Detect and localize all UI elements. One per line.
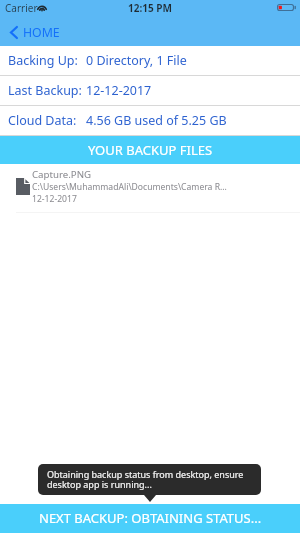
button[interactable]: Capture.PNG [0, 164, 300, 213]
staticText: HOME [23, 24, 60, 41]
staticText: C:\Users\MuhammadAli\Documents\Camera R.… [32, 181, 227, 193]
button[interactable]: YOUR BACKUP FILES [0, 136, 300, 164]
staticText: 4.56 GB used of 5.25 GB [86, 112, 227, 129]
button[interactable]: Last Backup: [0, 76, 300, 106]
staticText: Obtaining backup status from desktop, en… [47, 468, 247, 491]
button[interactable]: Backing Up: [0, 46, 300, 76]
staticText: Backing Up: [8, 52, 78, 69]
staticText: Carrier [5, 1, 38, 15]
button[interactable]: Cloud Data: [0, 106, 300, 136]
staticText: 12-12-2017 [32, 193, 77, 205]
staticText: NEXT BACKUP: OBTAINING STATUS... [39, 509, 262, 527]
other: Back to Home [9, 25, 18, 40]
staticText: 12:15 PM [128, 1, 172, 15]
staticText: Capture.PNG [32, 168, 92, 181]
button[interactable]: Back to Home [0, 24, 68, 43]
staticText: YOUR BACKUP FILES [88, 141, 213, 159]
staticText: 12-12-2017 [86, 82, 152, 99]
staticText: Last Backup: [8, 82, 82, 99]
staticText: 0 Directory, 1 File [86, 52, 187, 69]
button[interactable]: NEXT BACKUP: OBTAINING STATUS... [0, 504, 300, 533]
staticText: Cloud Data: [8, 112, 77, 129]
